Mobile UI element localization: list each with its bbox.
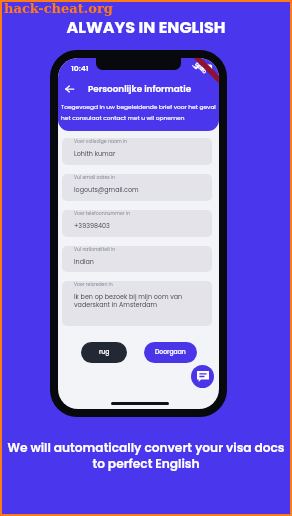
button[interactable]: Back — [61, 80, 78, 97]
staticText: Lohith kumar — [74, 149, 116, 158]
staticText: +39398403 — [74, 221, 110, 230]
button[interactable]: Voer telefoonnummer in — [62, 210, 212, 237]
staticText: hack-cheat.org — [4, 1, 113, 16]
button[interactable]: Voer volledige naam in — [62, 138, 212, 165]
staticText: Indian — [74, 257, 94, 266]
staticText: 10:41 — [71, 63, 89, 74]
staticText: DEMO — [194, 61, 208, 75]
staticText: Vul email adres in — [74, 174, 116, 180]
staticText: Voer telefoonnummer in — [74, 210, 130, 216]
button[interactable]: Chat — [191, 365, 214, 388]
staticText: logouts@gmail.com — [74, 185, 139, 194]
staticText: Voer reisreden in — [74, 281, 113, 287]
staticText: rug — [99, 348, 110, 357]
staticText: Ik ben op bezoek bij mijn oom van vaders… — [74, 292, 183, 309]
staticText: ALWAYS IN ENGLISH — [2, 16, 290, 38]
staticText: Doorgaan — [155, 348, 186, 357]
button[interactable]: Doorgaan — [144, 342, 197, 363]
staticText: Voer volledige naam in — [74, 138, 128, 144]
button[interactable]: Vul nationaliteit in — [62, 246, 212, 272]
button[interactable]: Vul email adres in — [62, 174, 212, 201]
staticText: We will automatically convert your visa … — [2, 439, 290, 472]
staticText: Persoonlijke informatie — [88, 83, 192, 95]
staticText: Toegevoegd in uw begeleidende brief voor… — [61, 103, 216, 122]
staticText: Vul nationaliteit in — [74, 246, 116, 252]
button[interactable]: Voer reisreden in — [62, 281, 212, 326]
button[interactable]: rug — [81, 342, 127, 363]
